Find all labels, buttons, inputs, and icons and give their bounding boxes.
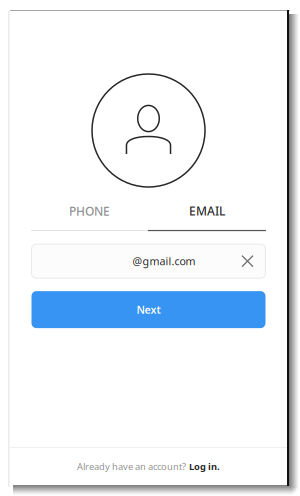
staticText: @gmail.com (132, 254, 195, 268)
button[interactable]: Clear text (242, 256, 253, 267)
staticText: Log in. (189, 460, 220, 473)
button[interactable]: Next (31, 291, 265, 328)
staticText: EMAIL (189, 203, 225, 219)
staticText: PHONE (69, 203, 110, 219)
button[interactable]: EMAIL (148, 200, 266, 231)
staticText: Already have an account? (77, 460, 186, 473)
button[interactable]: PHONE (31, 200, 148, 231)
staticText: Next (136, 303, 160, 317)
button[interactable]: Already have an account? (9, 448, 288, 485)
